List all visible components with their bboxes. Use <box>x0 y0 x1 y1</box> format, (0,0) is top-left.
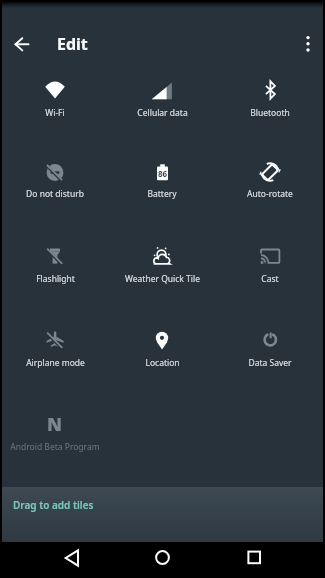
staticText: Edit <box>57 33 88 55</box>
button[interactable] <box>56 542 88 574</box>
staticText: N <box>47 412 63 436</box>
staticText: Wi-Fi <box>45 107 65 119</box>
button[interactable] <box>238 541 270 573</box>
button[interactable]: Drag to add tiles <box>2 487 323 542</box>
button[interactable]: Flashlight <box>1 242 109 288</box>
button[interactable]: Cast <box>216 242 324 288</box>
button[interactable] <box>146 541 178 573</box>
button[interactable]: Auto-rotate <box>216 158 324 203</box>
staticText: Do not disturb <box>26 188 84 200</box>
staticText: Weather Quick Tile <box>125 273 200 285</box>
staticText: 86 <box>158 168 168 177</box>
staticText: Data Saver <box>248 357 292 369</box>
staticText: Location <box>145 357 180 369</box>
staticText: Cast <box>261 273 279 285</box>
staticText: Drag to add tiles <box>13 498 94 512</box>
staticText: Battery <box>147 188 177 200</box>
button[interactable]: Bluetooth <box>216 76 324 122</box>
staticText: Flashlight <box>36 273 75 285</box>
staticText: Airplane mode <box>26 357 85 369</box>
button[interactable]: Location <box>108 326 216 372</box>
button[interactable]: Cellular data <box>108 76 216 122</box>
staticText: Bluetooth <box>250 107 290 119</box>
button[interactable] <box>296 30 320 58</box>
button[interactable]: Do not disturb <box>1 158 109 203</box>
button[interactable] <box>8 30 36 58</box>
button[interactable]: Android Beta Program <box>1 410 109 456</box>
button[interactable]: Weather Quick Tile <box>108 242 216 288</box>
button[interactable]: Data Saver <box>216 326 324 372</box>
button[interactable]: Battery <box>108 158 216 203</box>
staticText: Android Beta Program <box>10 441 100 453</box>
button[interactable]: Wi-Fi <box>1 76 109 122</box>
staticText: Cellular data <box>137 107 188 119</box>
button[interactable]: Airplane mode <box>1 326 109 372</box>
staticText: Auto-rotate <box>247 188 293 200</box>
